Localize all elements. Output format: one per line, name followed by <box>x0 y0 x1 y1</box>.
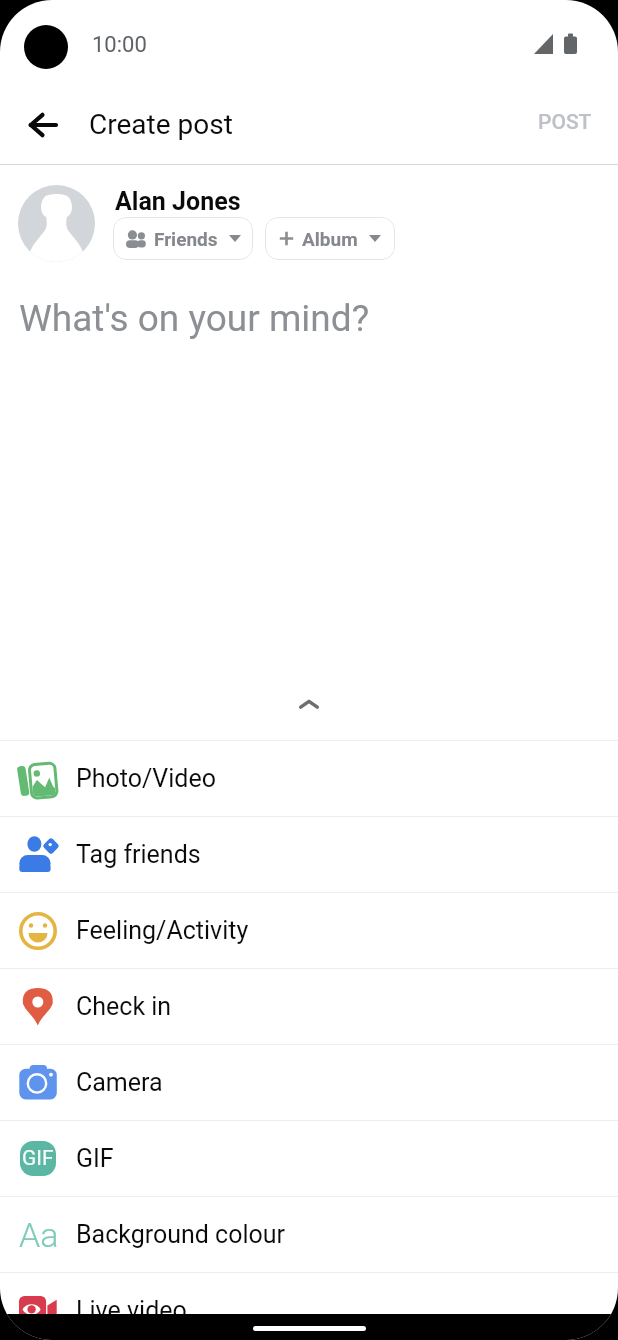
button[interactable]: Profile photo <box>18 185 95 262</box>
staticText: Live video <box>76 1296 187 1325</box>
staticText: Album <box>302 228 358 250</box>
staticText: POST <box>538 110 592 135</box>
button[interactable]: Home <box>253 1326 366 1331</box>
staticText: Alan Jones <box>115 187 241 216</box>
button[interactable]: Camera <box>0 1045 618 1120</box>
button[interactable]: Photo/Video <box>0 741 618 816</box>
staticText: Tag friends <box>76 840 201 869</box>
staticText: Friends <box>154 228 218 250</box>
button[interactable]: Feeling/Activity <box>0 893 618 968</box>
button[interactable]: Live video <box>0 1273 618 1340</box>
button[interactable]: Back <box>15 97 71 153</box>
staticText: Camera <box>76 1068 163 1097</box>
staticText: What's on your mind? <box>19 297 370 340</box>
staticText: Feeling/Activity <box>76 916 249 945</box>
button[interactable]: Check in <box>0 969 618 1044</box>
button[interactable]: Tag friends <box>0 817 618 892</box>
staticText: Background colour <box>76 1220 286 1249</box>
staticText: Create post <box>89 108 233 141</box>
staticText: Aa <box>19 1215 59 1255</box>
button[interactable]: Expand options <box>0 675 618 735</box>
button[interactable]: Aa <box>0 1197 618 1272</box>
staticText: Check in <box>76 992 172 1021</box>
staticText: GIF <box>22 1146 54 1171</box>
button[interactable]: POST <box>522 98 608 147</box>
button[interactable]: GIF <box>0 1121 618 1196</box>
staticText: 10:00 <box>92 32 147 58</box>
button[interactable]: Album <box>265 217 395 260</box>
button[interactable]: Friends <box>113 217 253 260</box>
staticText: Photo/Video <box>76 764 216 793</box>
staticText: GIF <box>76 1144 114 1173</box>
